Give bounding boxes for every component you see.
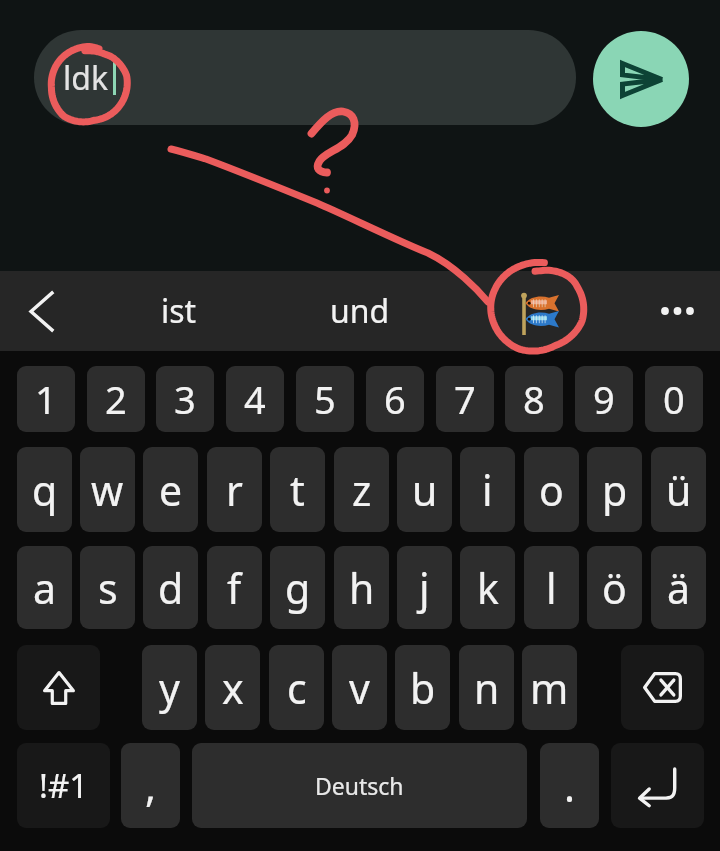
button[interactable]: n (459, 645, 514, 730)
staticText: !#1 (39, 763, 89, 808)
staticText: ist (161, 289, 197, 333)
staticText: a (33, 560, 57, 616)
staticText: 7 (454, 373, 476, 425)
staticText: 1 (35, 373, 57, 425)
button[interactable]: g (270, 546, 325, 629)
button[interactable]: j (397, 546, 452, 629)
staticText: w (91, 462, 124, 518)
button[interactable]: . (540, 743, 599, 828)
staticText: f (227, 560, 242, 616)
staticText: d (158, 560, 184, 616)
button[interactable]: Back (12, 271, 70, 351)
staticText: ldk (63, 56, 109, 100)
button[interactable]: ist (120, 271, 238, 351)
button[interactable]: s (80, 546, 135, 629)
button[interactable]: t (270, 447, 325, 532)
button[interactable]: ä (651, 546, 706, 629)
staticText: i (482, 462, 493, 518)
staticText: ä (667, 560, 691, 616)
button[interactable]: Send (593, 31, 689, 127)
button[interactable]: Enter (611, 743, 704, 828)
staticText: m (530, 660, 569, 716)
staticText: h (349, 560, 375, 616)
button[interactable]: 1 (17, 366, 75, 432)
button[interactable]: e (143, 447, 198, 532)
button[interactable]: , (121, 743, 180, 828)
button[interactable]: m (522, 645, 577, 730)
button[interactable]: Backspace (621, 645, 704, 730)
button[interactable]: h (334, 546, 389, 629)
button[interactable]: l (524, 546, 579, 629)
button[interactable]: ü (651, 447, 706, 532)
button[interactable]: und (300, 271, 420, 351)
button[interactable]: More options (641, 271, 713, 351)
button[interactable]: u (397, 447, 452, 532)
button[interactable]: !#1 (17, 743, 110, 828)
button[interactable]: c (269, 645, 324, 730)
staticText: e (159, 462, 183, 518)
staticText: s (98, 560, 118, 616)
staticText: t (290, 462, 305, 518)
staticText: 4 (244, 373, 266, 425)
staticText: 3 (174, 373, 196, 425)
staticText: r (226, 462, 243, 518)
button[interactable]: z (334, 447, 389, 532)
button[interactable]: a (17, 546, 72, 629)
button[interactable]: b (395, 645, 450, 730)
button[interactable]: 5 (296, 366, 354, 432)
staticText: 2 (105, 373, 127, 425)
button[interactable]: q (17, 447, 72, 532)
staticText: n (474, 660, 500, 716)
staticText: ö (602, 560, 627, 616)
button[interactable]: 2 (87, 366, 145, 432)
button[interactable]: 6 (366, 366, 424, 432)
staticText: Deutsch (315, 770, 404, 801)
staticText: j (419, 560, 430, 616)
staticText: ü (666, 462, 692, 518)
button[interactable]: k (460, 546, 515, 629)
staticText: p (602, 462, 628, 518)
staticText: z (352, 462, 372, 518)
button[interactable]: v (332, 645, 387, 730)
button[interactable]: x (205, 645, 260, 730)
button[interactable]: ö (587, 546, 642, 629)
button[interactable]: 7 (436, 366, 494, 432)
staticText: v (349, 660, 370, 716)
button[interactable]: o (524, 447, 579, 532)
button[interactable]: 4 (226, 366, 284, 432)
staticText: k (477, 560, 499, 616)
staticText: 9 (593, 373, 615, 425)
staticText: 8 (523, 373, 545, 425)
staticText: , (145, 758, 156, 814)
button[interactable]: w (80, 447, 135, 532)
staticText: b (410, 660, 436, 716)
button[interactable]: ldk (34, 30, 576, 125)
staticText: o (539, 462, 564, 518)
staticText: 0 (663, 373, 685, 425)
staticText: und (330, 289, 390, 333)
button[interactable]: p (587, 447, 642, 532)
button[interactable]: Emoji suggestion (508, 271, 572, 351)
button[interactable]: 8 (505, 366, 563, 432)
staticText: 5 (314, 373, 336, 425)
button[interactable]: 0 (645, 366, 703, 432)
button[interactable]: f (207, 546, 262, 629)
staticText: x (222, 660, 244, 716)
staticText: u (412, 462, 438, 518)
staticText: g (285, 560, 311, 616)
staticText: l (546, 560, 557, 616)
staticText: . (564, 758, 575, 814)
button[interactable]: d (143, 546, 198, 629)
button[interactable]: r (207, 447, 262, 532)
staticText: y (159, 660, 180, 716)
staticText: c (287, 660, 307, 716)
button[interactable]: Shift (17, 645, 100, 730)
staticText: 6 (384, 373, 406, 425)
button[interactable]: 3 (156, 366, 214, 432)
button[interactable]: i (460, 447, 515, 532)
staticText: q (32, 462, 58, 518)
button[interactable]: Deutsch (192, 743, 527, 828)
button[interactable]: y (142, 645, 197, 730)
button[interactable]: 9 (575, 366, 633, 432)
